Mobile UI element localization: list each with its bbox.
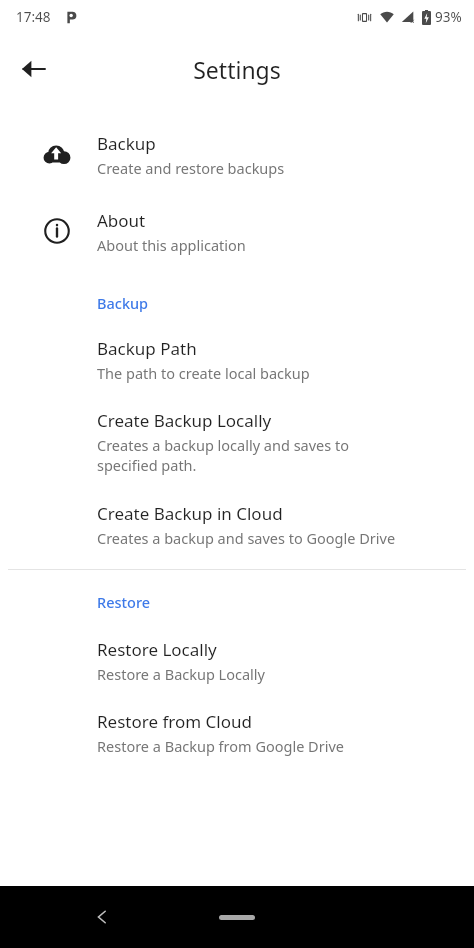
staticText: Restore a Backup Locally <box>97 664 265 684</box>
button[interactable]: Backup <box>0 130 474 178</box>
button[interactable]: Back <box>78 893 126 941</box>
staticText: Settings <box>193 54 281 85</box>
staticText: Create and restore backups <box>97 158 285 178</box>
button[interactable]: About <box>0 207 474 255</box>
staticText: 93% <box>435 8 462 26</box>
staticText: Backup <box>97 293 149 313</box>
button[interactable]: Create Backup Locally <box>0 409 474 476</box>
button[interactable]: Backup Path <box>0 337 474 383</box>
button[interactable]: Restore Locally <box>0 638 474 684</box>
staticText: Create Backup Locally <box>97 409 272 432</box>
staticText: Restore Locally <box>97 638 217 661</box>
staticText: About this application <box>97 235 246 255</box>
staticText: Creates a backup locally and saves to sp… <box>97 435 349 476</box>
button[interactable]: Create Backup in Cloud <box>0 502 474 548</box>
button[interactable]: Restore from Cloud <box>0 710 474 756</box>
staticText: Restore a Backup from Google Drive <box>97 736 344 756</box>
staticText: 17:48 <box>16 8 51 26</box>
staticText: Backup <box>97 132 156 155</box>
button[interactable]: Back <box>10 45 58 93</box>
staticText: Create Backup in Cloud <box>97 502 283 525</box>
staticText: Restore <box>97 592 151 612</box>
staticText: Backup Path <box>97 337 197 360</box>
staticText: About <box>97 209 146 232</box>
button[interactable]: Home <box>183 895 291 939</box>
staticText: The path to create local backup <box>97 363 310 383</box>
staticText: Creates a backup and saves to Google Dri… <box>97 528 396 548</box>
staticText: Restore from Cloud <box>97 710 252 733</box>
